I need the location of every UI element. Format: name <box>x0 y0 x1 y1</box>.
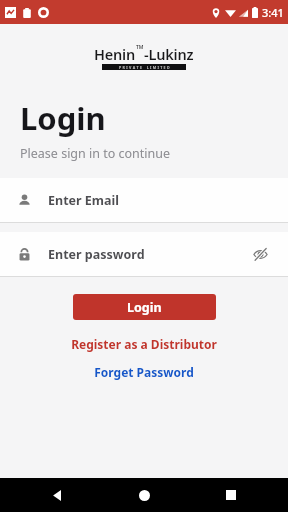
button[interactable]: Home <box>131 482 157 508</box>
staticText: TM <box>136 44 144 51</box>
staticText: Forget Password <box>94 364 194 380</box>
button[interactable]: Toggle password visibility <box>248 242 272 266</box>
staticText: 3:41 <box>262 5 284 20</box>
other: Email <box>18 194 31 207</box>
staticText: Enter Email <box>48 192 272 209</box>
button[interactable]: Password <box>0 232 288 277</box>
button[interactable]: Register as a Distributor <box>0 334 288 354</box>
staticText: Enter password <box>48 246 248 263</box>
button[interactable]: Recent apps <box>218 482 244 508</box>
staticText: Henin <box>94 44 136 64</box>
staticText: P R I V A T E L I M I T E D <box>119 65 170 70</box>
other: Password <box>18 248 31 261</box>
staticText: -Lukinz <box>144 44 194 64</box>
button[interactable]: Back <box>44 482 70 508</box>
staticText: Login <box>127 299 162 316</box>
button[interactable]: Email <box>0 178 288 223</box>
button[interactable]: Forget Password <box>0 362 288 382</box>
staticText: Register as a Distributor <box>71 336 217 352</box>
button[interactable]: Login <box>73 294 216 320</box>
staticText: Login <box>20 97 106 139</box>
staticText: Please sign in to continue <box>20 145 171 162</box>
